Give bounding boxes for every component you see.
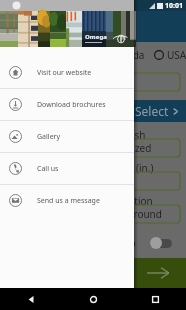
button[interactable]	[6, 73, 180, 91]
staticText: Omega	[85, 33, 108, 41]
staticText: Select	[135, 103, 169, 119]
button[interactable]: Galvanized	[6, 139, 180, 157]
staticText: Configurator	[42, 19, 109, 34]
button[interactable]: Recents	[124, 288, 186, 310]
staticText: Visit our website	[37, 68, 92, 78]
button[interactable]: Back	[0, 288, 62, 310]
button[interactable]	[150, 237, 172, 249]
staticText: Send us a message	[37, 196, 100, 206]
button[interactable]: Send us a message	[0, 185, 134, 216]
button[interactable]: Call us	[0, 153, 134, 184]
staticText: In Ground	[114, 207, 162, 221]
button[interactable]: Gallery	[0, 121, 134, 152]
staticText: Size (in.)	[115, 161, 154, 175]
staticText: No	[122, 236, 136, 250]
staticText: Installation	[100, 194, 153, 208]
button[interactable]: Next	[0, 258, 186, 288]
staticText: Download brochures	[37, 100, 106, 110]
button[interactable]	[6, 172, 180, 190]
staticText: Galvanized	[100, 141, 152, 155]
staticText: Canada	[109, 48, 145, 62]
staticText: Finish	[118, 128, 146, 142]
button[interactable]: Download brochures	[0, 89, 134, 120]
button[interactable]: Select	[0, 100, 186, 122]
button[interactable]: In Ground	[6, 205, 180, 223]
button[interactable]: Home	[62, 288, 124, 310]
button[interactable]: Visit our website	[0, 57, 134, 88]
staticText: Call us	[37, 164, 59, 174]
staticText: USA	[167, 48, 186, 62]
staticText: Gallery	[37, 132, 61, 142]
staticText: 10:01	[165, 1, 183, 11]
